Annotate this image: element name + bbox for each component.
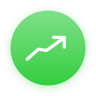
button[interactable]: Trending up: [0, 0, 96, 96]
